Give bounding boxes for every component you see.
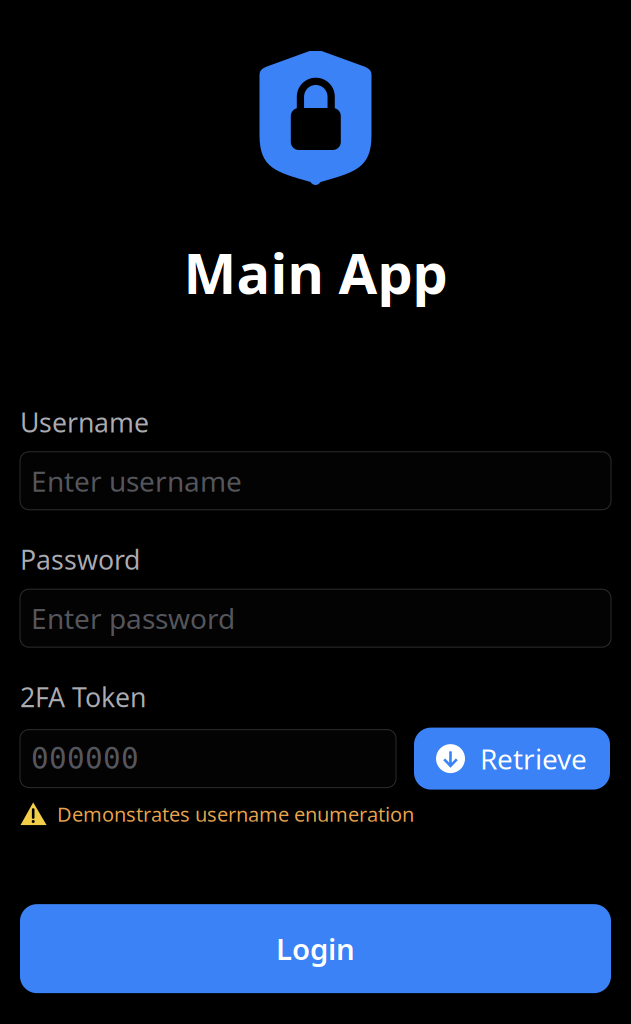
staticText: Enter username xyxy=(31,462,242,499)
staticText: Main App xyxy=(183,235,447,309)
staticText: Demonstrates username enumeration xyxy=(57,801,414,827)
staticText: 2FA Token xyxy=(20,679,146,715)
button[interactable]: Username xyxy=(20,452,611,510)
staticText: 000000 xyxy=(31,742,139,775)
staticText: Password xyxy=(20,542,140,577)
button[interactable]: 2FA Token xyxy=(20,730,396,788)
button[interactable]: Retrieve xyxy=(414,728,610,790)
button[interactable]: Password xyxy=(20,589,611,647)
staticText: Login xyxy=(276,929,355,968)
staticText: Username xyxy=(20,404,149,440)
staticText: Enter password xyxy=(31,600,235,637)
button[interactable]: Login xyxy=(20,904,611,993)
staticText: Retrieve xyxy=(480,740,587,777)
